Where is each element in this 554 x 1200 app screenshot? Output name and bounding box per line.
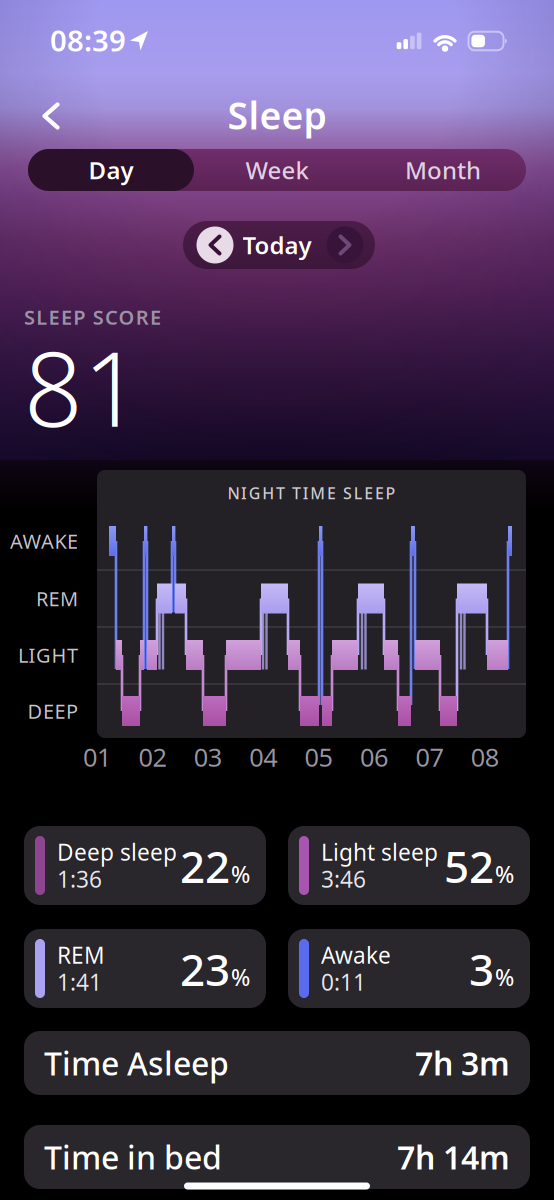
staticText: 3:46: [321, 864, 366, 894]
staticText: Awake: [321, 940, 391, 970]
staticText: %: [495, 962, 514, 992]
staticText: Deep sleep: [57, 837, 177, 867]
button[interactable]: [196, 226, 233, 263]
staticText: 01: [83, 740, 111, 774]
staticText: Today: [242, 229, 311, 261]
staticText: DEEP: [27, 698, 78, 724]
staticText: Month: [405, 154, 481, 186]
staticText: 05: [305, 740, 333, 774]
staticText: NIGHT TIME SLEEP: [227, 482, 395, 504]
staticText: 0:11: [321, 967, 366, 997]
staticText: REM: [57, 940, 105, 970]
staticText: 81: [24, 319, 142, 455]
staticText: 1:36: [57, 864, 102, 894]
staticText: 06: [360, 740, 388, 774]
staticText: AWAKE: [10, 528, 78, 554]
staticText: LIGHT: [18, 642, 78, 668]
staticText: 07: [415, 740, 443, 774]
staticText: REM: [36, 585, 78, 612]
staticText: Day: [88, 154, 133, 186]
staticText: 3: [469, 940, 494, 998]
staticText: Sleep: [227, 90, 326, 140]
staticText: 22: [180, 837, 230, 895]
button[interactable]: Day: [28, 149, 194, 191]
staticText: %: [495, 859, 514, 889]
staticText: 08:39: [50, 20, 126, 59]
staticText: 52: [444, 837, 494, 895]
staticText: 08: [471, 740, 499, 774]
staticText: %: [231, 962, 250, 992]
button[interactable]: Week: [194, 149, 360, 191]
staticText: %: [231, 859, 250, 889]
staticText: Time Asleep: [44, 1042, 229, 1084]
staticText: 1:41: [57, 967, 102, 997]
staticText: 02: [138, 740, 166, 774]
staticText: 7h 3m: [415, 1042, 510, 1084]
staticText: SLEEP SCORE: [24, 304, 161, 330]
staticText: 23: [180, 940, 230, 998]
staticText: 04: [249, 740, 277, 774]
button[interactable]: Month: [360, 149, 526, 191]
staticText: Light sleep: [321, 837, 438, 867]
staticText: Time in bed: [44, 1136, 222, 1178]
staticText: Week: [245, 154, 308, 186]
staticText: 03: [194, 740, 222, 774]
staticText: 7h 14m: [397, 1136, 510, 1178]
button[interactable]: [44, 104, 57, 127]
button[interactable]: [326, 226, 363, 263]
